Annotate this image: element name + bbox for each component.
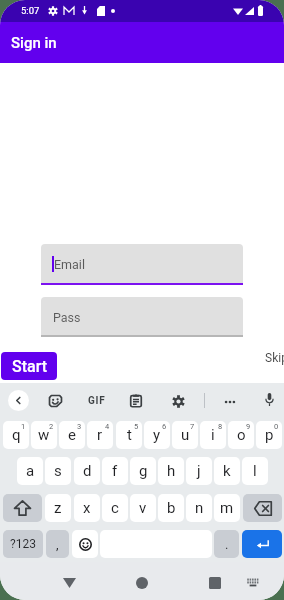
staticText: d [83, 462, 92, 480]
staticText: ?123 [10, 537, 36, 551]
staticText: x [83, 499, 91, 517]
button[interactable]: n [186, 494, 212, 522]
button[interactable]: d [74, 457, 100, 485]
button[interactable]: f [102, 457, 128, 485]
button[interactable]: w [31, 421, 57, 449]
button[interactable]: del [243, 494, 282, 522]
button[interactable]: a [17, 457, 43, 485]
button[interactable]: q [3, 421, 29, 449]
button[interactable]: k [214, 457, 240, 485]
button[interactable]: Back [54, 568, 84, 598]
staticText: 0 [274, 422, 279, 431]
button[interactable]: More options [221, 393, 238, 410]
staticText: u [181, 426, 190, 444]
staticText: g [139, 462, 148, 480]
staticText: Start [12, 357, 47, 376]
button[interactable]: Sign in [0, 22, 284, 63]
button[interactable]: u [172, 421, 198, 449]
button[interactable]: shift [3, 494, 42, 522]
button[interactable]: Recent apps [200, 568, 230, 598]
staticText: 9 [246, 422, 251, 431]
button[interactable]: h [158, 457, 184, 485]
button[interactable]: Hide keyboard [240, 569, 266, 595]
staticText: m [220, 499, 234, 517]
staticText: z [54, 499, 62, 517]
staticText: j [197, 462, 201, 480]
button[interactable]: c [102, 494, 128, 522]
staticText: i [211, 426, 215, 444]
staticText: GIF [88, 395, 106, 407]
staticText: k [223, 462, 231, 480]
button[interactable]: b [158, 494, 184, 522]
button[interactable]: ?123 [3, 530, 43, 558]
staticText: o [237, 426, 246, 444]
button[interactable]: Voice input [262, 392, 277, 407]
button[interactable]: GIF [86, 393, 107, 409]
staticText: . [225, 537, 229, 552]
button[interactable]: t [116, 421, 142, 449]
staticText: t [127, 426, 132, 444]
button[interactable]: l [242, 457, 268, 485]
staticText: w [38, 426, 50, 444]
staticText: b [167, 499, 176, 517]
staticText: Email [54, 257, 85, 272]
staticText: 3 [77, 422, 82, 431]
staticText: 6 [162, 422, 167, 431]
button[interactable]: y [144, 421, 170, 449]
staticText: 7 [190, 422, 195, 431]
staticText: p [265, 426, 274, 444]
button[interactable]: Settings [170, 393, 186, 409]
staticText: 5 [134, 422, 139, 431]
button[interactable]: p [256, 421, 282, 449]
staticText: e [68, 426, 76, 444]
button[interactable]: Email [41, 244, 243, 285]
button[interactable]: Stickers [47, 393, 63, 409]
button[interactable]: s [45, 457, 71, 485]
staticText: a [26, 462, 35, 480]
button[interactable]: Start [1, 352, 57, 380]
button[interactable]: r [87, 421, 113, 449]
staticText: l [253, 462, 257, 480]
staticText: 8 [218, 422, 223, 431]
staticText: 5:07 [21, 5, 40, 16]
staticText: r [97, 426, 103, 444]
button[interactable]: z [45, 494, 71, 522]
button[interactable]: m [214, 494, 240, 522]
staticText: v [139, 499, 147, 517]
staticText: Pass [53, 310, 81, 325]
staticText: 2 [49, 422, 54, 431]
button[interactable]: . [214, 530, 239, 558]
staticText: f [112, 462, 118, 480]
staticText: h [167, 462, 176, 480]
staticText: Sign in [11, 34, 57, 52]
button[interactable]: , [46, 530, 69, 558]
button[interactable]: e [59, 421, 85, 449]
button[interactable]: enter [242, 530, 282, 558]
button[interactable]: i [200, 421, 226, 449]
button[interactable]: x [74, 494, 100, 522]
button[interactable] [72, 530, 98, 558]
button[interactable]: v [130, 494, 156, 522]
staticText: y [153, 426, 161, 444]
staticText: , [56, 537, 59, 552]
staticText: Skip [265, 351, 284, 365]
staticText: s [54, 462, 62, 480]
button[interactable]: Back [8, 390, 29, 411]
staticText: 1 [21, 422, 26, 431]
button[interactable]: Skip [265, 351, 284, 365]
staticText: n [195, 499, 204, 517]
button[interactable]: Clipboard [128, 392, 144, 408]
button[interactable]: Pass [41, 297, 243, 337]
staticText: c [111, 499, 119, 517]
button[interactable]: g [130, 457, 156, 485]
staticText: q [12, 426, 21, 444]
button[interactable]: Home [127, 568, 157, 598]
button[interactable]: o [228, 421, 254, 449]
staticText: 4 [105, 422, 110, 431]
button[interactable]: j [186, 457, 212, 485]
